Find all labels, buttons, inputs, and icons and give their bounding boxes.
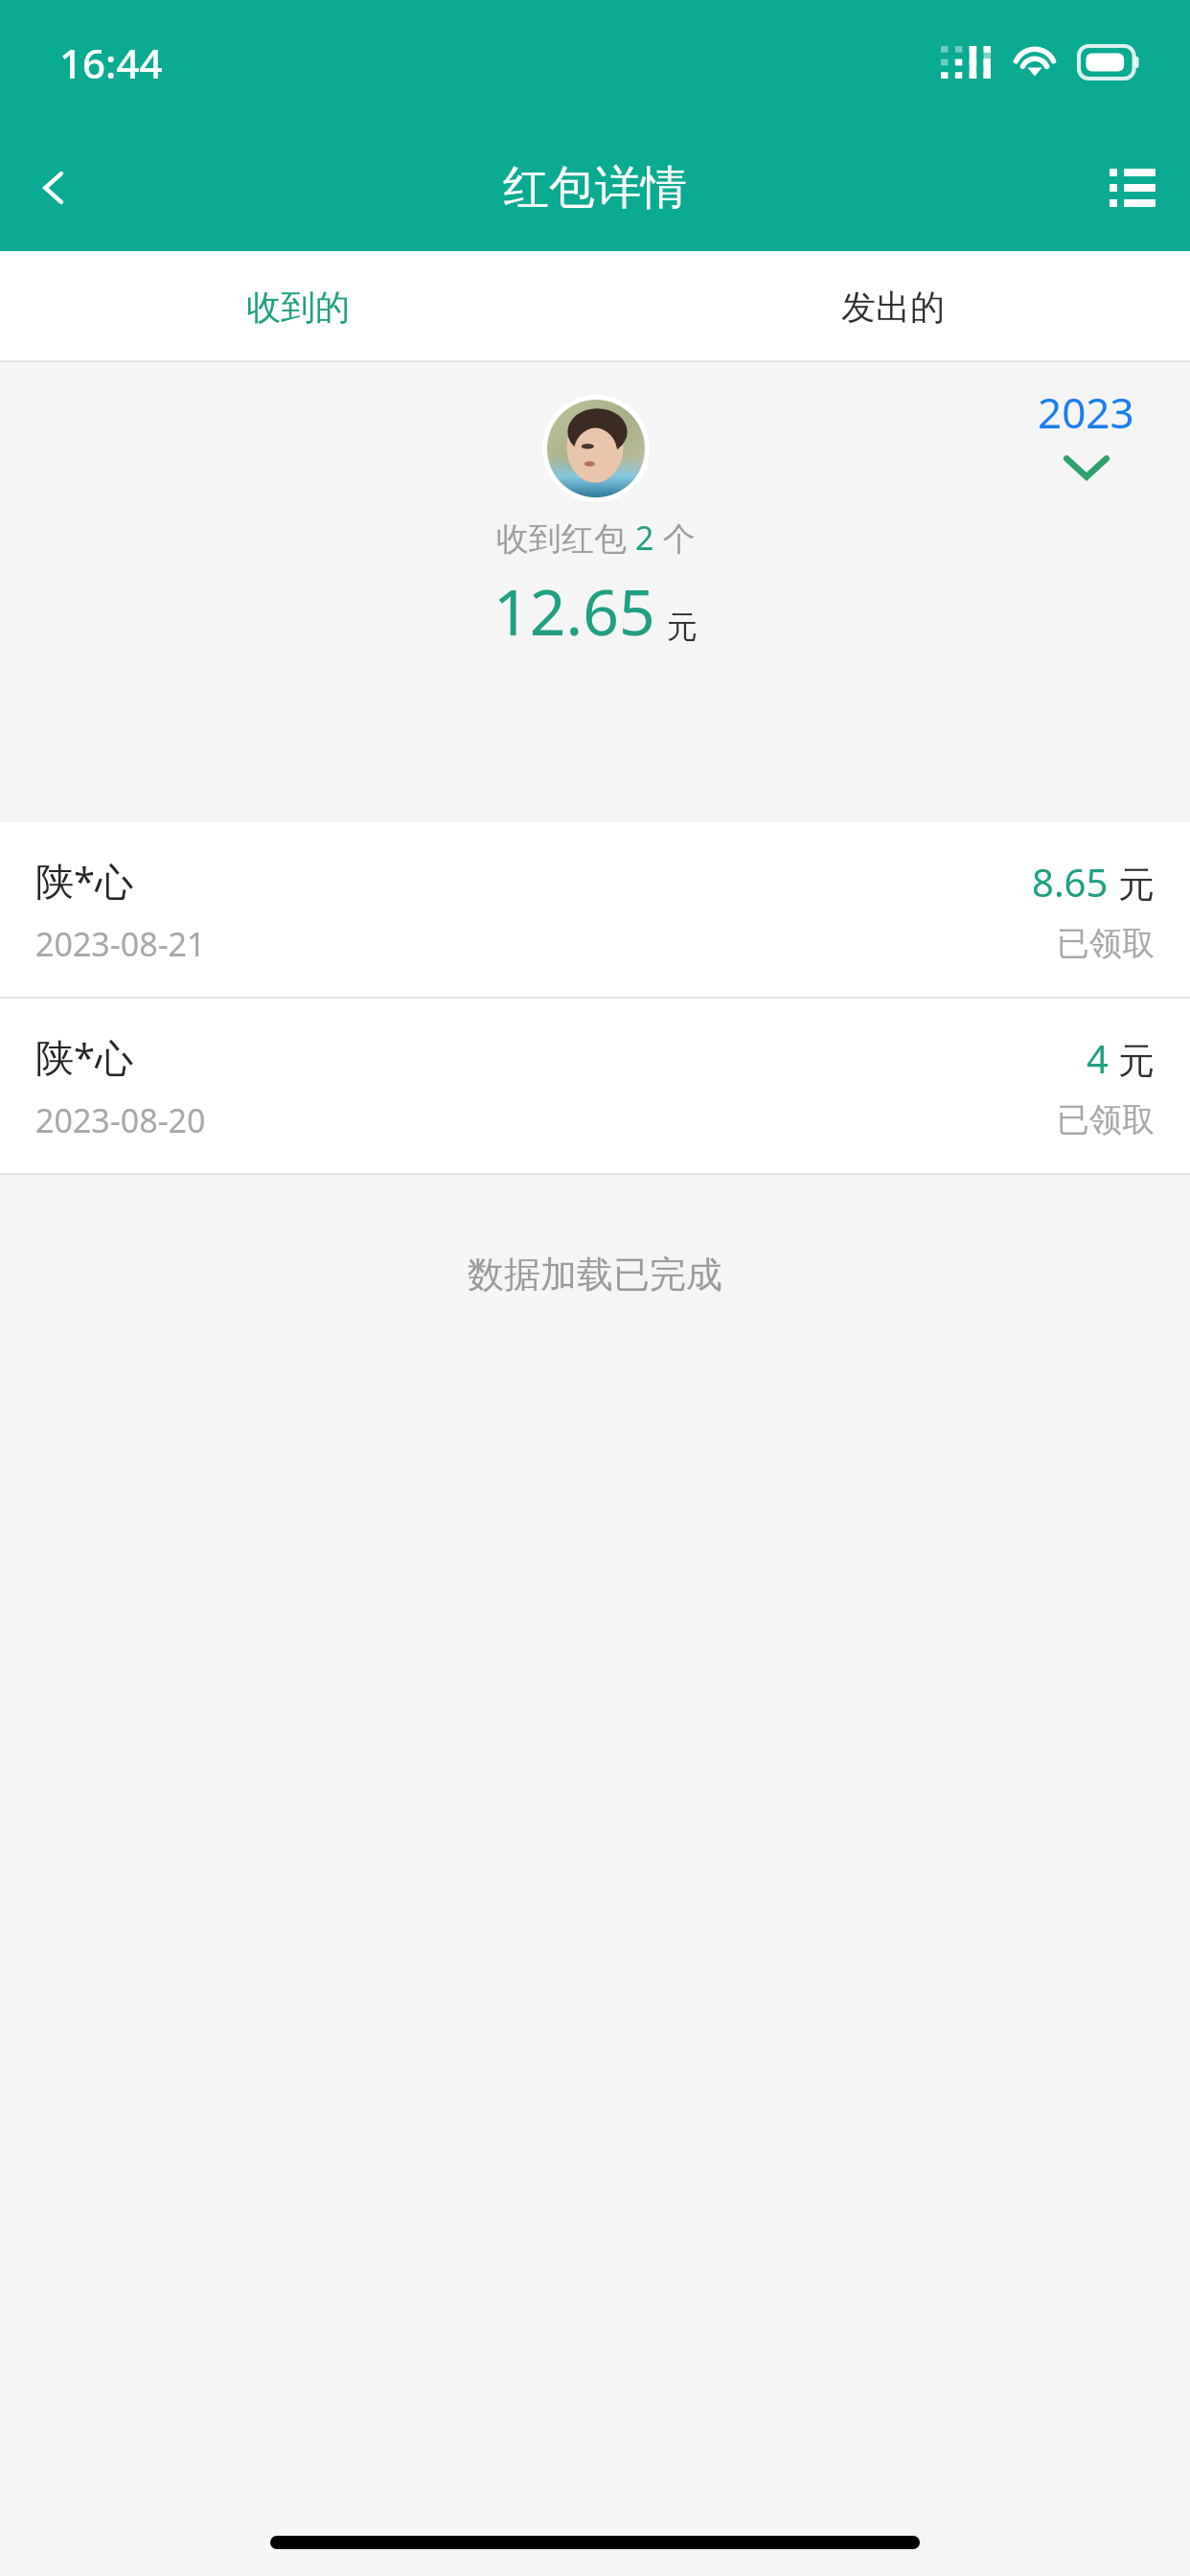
staticText: 2: [635, 516, 654, 560]
staticText: 4: [1087, 1032, 1109, 1084]
staticText: 2023-08-20: [35, 1098, 206, 1142]
staticText: 陕*心: [35, 1030, 134, 1083]
button[interactable]: 收到的: [0, 251, 595, 362]
staticText: 收到的: [246, 286, 350, 329]
staticText: 发出的: [841, 286, 945, 329]
button[interactable]: 发出的: [595, 251, 1190, 362]
staticText: 元: [1118, 862, 1155, 908]
staticText: 收到红包: [496, 516, 635, 560]
staticText: 元: [1118, 1038, 1155, 1084]
staticText: 已领取: [1057, 1099, 1155, 1140]
staticText: 数据加载已完成: [468, 1252, 722, 1298]
staticText: 陕*心: [35, 854, 134, 907]
button[interactable]: 2023: [1038, 383, 1134, 481]
staticText: 2023-08-21: [35, 922, 206, 966]
button[interactable]: 陕*心: [0, 999, 1190, 1173]
staticText: 16:44: [59, 35, 163, 90]
button[interactable]: Menu: [1075, 130, 1190, 245]
staticText: 元: [667, 608, 698, 646]
staticText: 2023: [1038, 383, 1134, 441]
staticText: 12.65: [493, 567, 655, 654]
button[interactable]: 陕*心: [0, 822, 1190, 997]
staticText: 个: [654, 516, 696, 560]
button[interactable]: Back: [0, 134, 107, 241]
staticText: 8.65: [1032, 856, 1109, 908]
staticText: 已领取: [1057, 923, 1155, 964]
staticText: 红包详情: [503, 159, 687, 217]
